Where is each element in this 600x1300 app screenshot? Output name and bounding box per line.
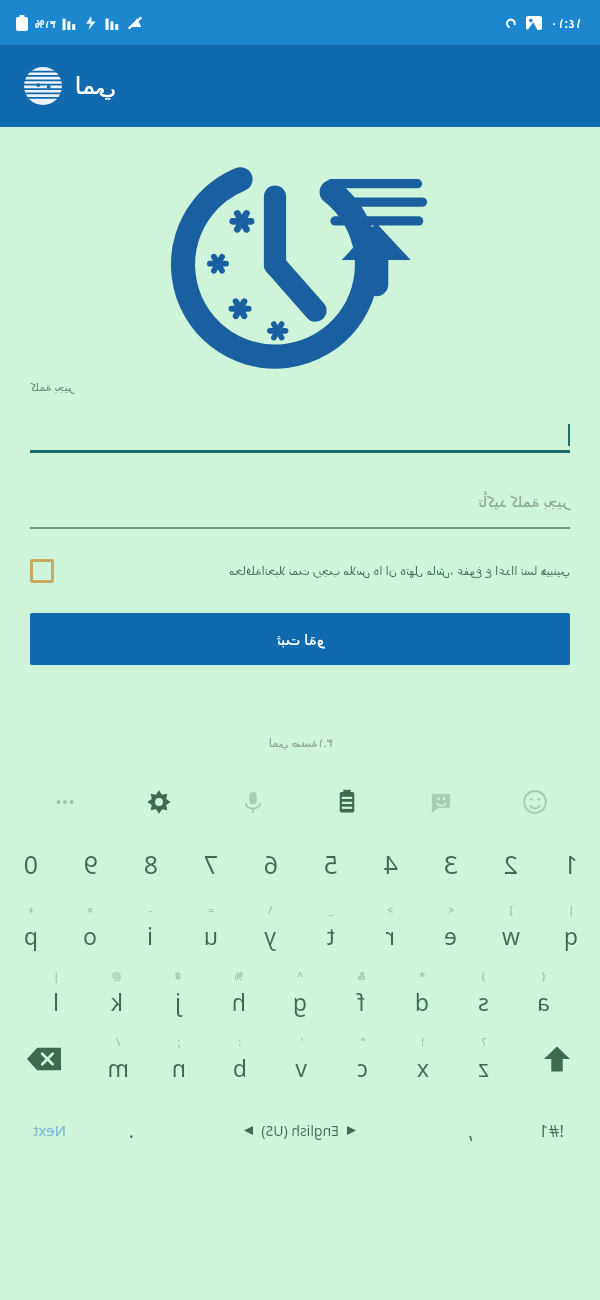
staticText: ! — [421, 1035, 424, 1049]
staticText: g — [292, 986, 307, 1017]
button[interactable]: !#1 — [502, 1103, 600, 1157]
button[interactable]: . — [98, 1103, 163, 1157]
button[interactable]: 7 — [180, 839, 240, 889]
button[interactable]: Space — [163, 1103, 437, 1157]
button[interactable]: # — [147, 965, 208, 1021]
staticText: > — [387, 903, 393, 917]
staticText: ( — [542, 969, 545, 983]
staticText: k — [110, 986, 123, 1017]
button[interactable]: ثبت لةو — [30, 613, 570, 665]
staticText: b — [232, 1052, 247, 1083]
staticText: لمي ضسة٣.١ — [268, 735, 333, 751]
staticText: 0 — [23, 847, 38, 881]
button[interactable]: 8 — [120, 839, 180, 889]
staticText: مخافلةاتخبلا نمت ريجب ملاس ةا ان ةتهل ما… — [64, 563, 570, 579]
staticText: & — [357, 969, 365, 983]
button[interactable]: = — [180, 899, 240, 955]
staticText: m — [107, 1052, 129, 1083]
button[interactable]: * — [391, 965, 452, 1021]
staticText: ثبت لةو — [276, 629, 324, 649]
button[interactable]: مخافلةاتخبلا نمت ريجب ملاس ةا ان ةتهل ما… — [30, 559, 570, 583]
staticText: English (US) — [261, 1121, 339, 1140]
staticText: r — [385, 920, 395, 951]
staticText: w — [501, 920, 520, 951]
staticText: o — [83, 920, 97, 951]
button[interactable]: Backspace — [0, 1031, 87, 1087]
button[interactable]: 0 — [0, 839, 60, 889]
staticText: t — [326, 920, 335, 951]
button[interactable]: Settings — [112, 779, 206, 825]
staticText: p — [23, 920, 38, 951]
button[interactable]: Voice input — [206, 779, 300, 825]
staticText: × — [87, 903, 93, 917]
button[interactable]: \ — [240, 899, 300, 955]
button[interactable]: ' — [270, 1031, 331, 1087]
staticText: 5 — [323, 847, 338, 881]
staticText: ? — [481, 1035, 486, 1049]
button[interactable]: Shift — [514, 1031, 600, 1087]
button[interactable]: 1 — [540, 839, 600, 889]
button[interactable]: 4 — [360, 839, 420, 889]
button[interactable]: ^ — [269, 965, 330, 1021]
staticText: | — [568, 903, 574, 917]
staticText: 1 — [563, 847, 578, 881]
staticText: i — [147, 920, 153, 951]
staticText: - — [148, 903, 152, 917]
button[interactable]: 2 — [480, 839, 540, 889]
button[interactable]: | — [540, 899, 600, 955]
button[interactable]: + — [0, 899, 60, 955]
staticText: . — [128, 1117, 134, 1144]
button[interactable]: / — [87, 1031, 148, 1087]
button[interactable]: % — [208, 965, 269, 1021]
staticText: h — [231, 986, 246, 1017]
staticText: a — [537, 986, 550, 1017]
staticText: s — [477, 986, 489, 1017]
button[interactable]: ? — [453, 1031, 514, 1087]
staticText: 7 — [203, 847, 218, 881]
staticText: " — [360, 1035, 365, 1049]
button[interactable]: & — [330, 965, 391, 1021]
button[interactable]: ; — [148, 1031, 209, 1087]
button[interactable]: Clipboard — [300, 779, 394, 825]
staticText: ; — [177, 1035, 180, 1049]
button[interactable]: , — [437, 1103, 502, 1157]
staticText: n — [171, 1052, 186, 1083]
staticText: | — [53, 969, 59, 983]
button[interactable]: _ — [300, 899, 360, 955]
staticText: ] — [509, 903, 513, 917]
staticText: : — [238, 1035, 241, 1049]
button[interactable]: ) — [452, 965, 513, 1021]
button[interactable]: @ — [86, 965, 147, 1021]
staticText: ^ — [297, 969, 303, 983]
button[interactable]: | — [26, 965, 86, 1021]
staticText: + — [28, 903, 34, 917]
button[interactable]: " — [331, 1031, 392, 1087]
button[interactable]: ! — [392, 1031, 453, 1087]
staticText: 9 — [83, 847, 98, 881]
button[interactable]: > — [360, 899, 420, 955]
button[interactable]: < — [420, 899, 480, 955]
staticText: 3 — [443, 847, 458, 881]
button[interactable]: Next — [0, 1103, 98, 1157]
staticText: \ — [268, 903, 272, 917]
button[interactable]: 9 — [60, 839, 120, 889]
button[interactable]: ( — [513, 965, 574, 1021]
staticText: 8 — [143, 847, 158, 881]
staticText: v — [295, 1052, 307, 1083]
staticText: q — [563, 920, 578, 951]
button[interactable]: Emoji — [488, 779, 582, 825]
button[interactable]: 3 — [420, 839, 480, 889]
staticText: @ — [112, 969, 121, 983]
staticText: z — [478, 1052, 489, 1083]
button[interactable]: ] — [480, 899, 540, 955]
button[interactable]: More options — [18, 779, 112, 825]
button[interactable]: : — [209, 1031, 270, 1087]
staticText: e — [444, 920, 457, 951]
staticText: تأكيد كلمة بجير — [478, 491, 570, 511]
staticText: j — [175, 986, 181, 1017]
button[interactable]: 5 — [300, 839, 360, 889]
button[interactable]: × — [60, 899, 120, 955]
button[interactable]: 6 — [240, 839, 300, 889]
button[interactable]: Stickers — [394, 779, 488, 825]
button[interactable]: - — [120, 899, 180, 955]
